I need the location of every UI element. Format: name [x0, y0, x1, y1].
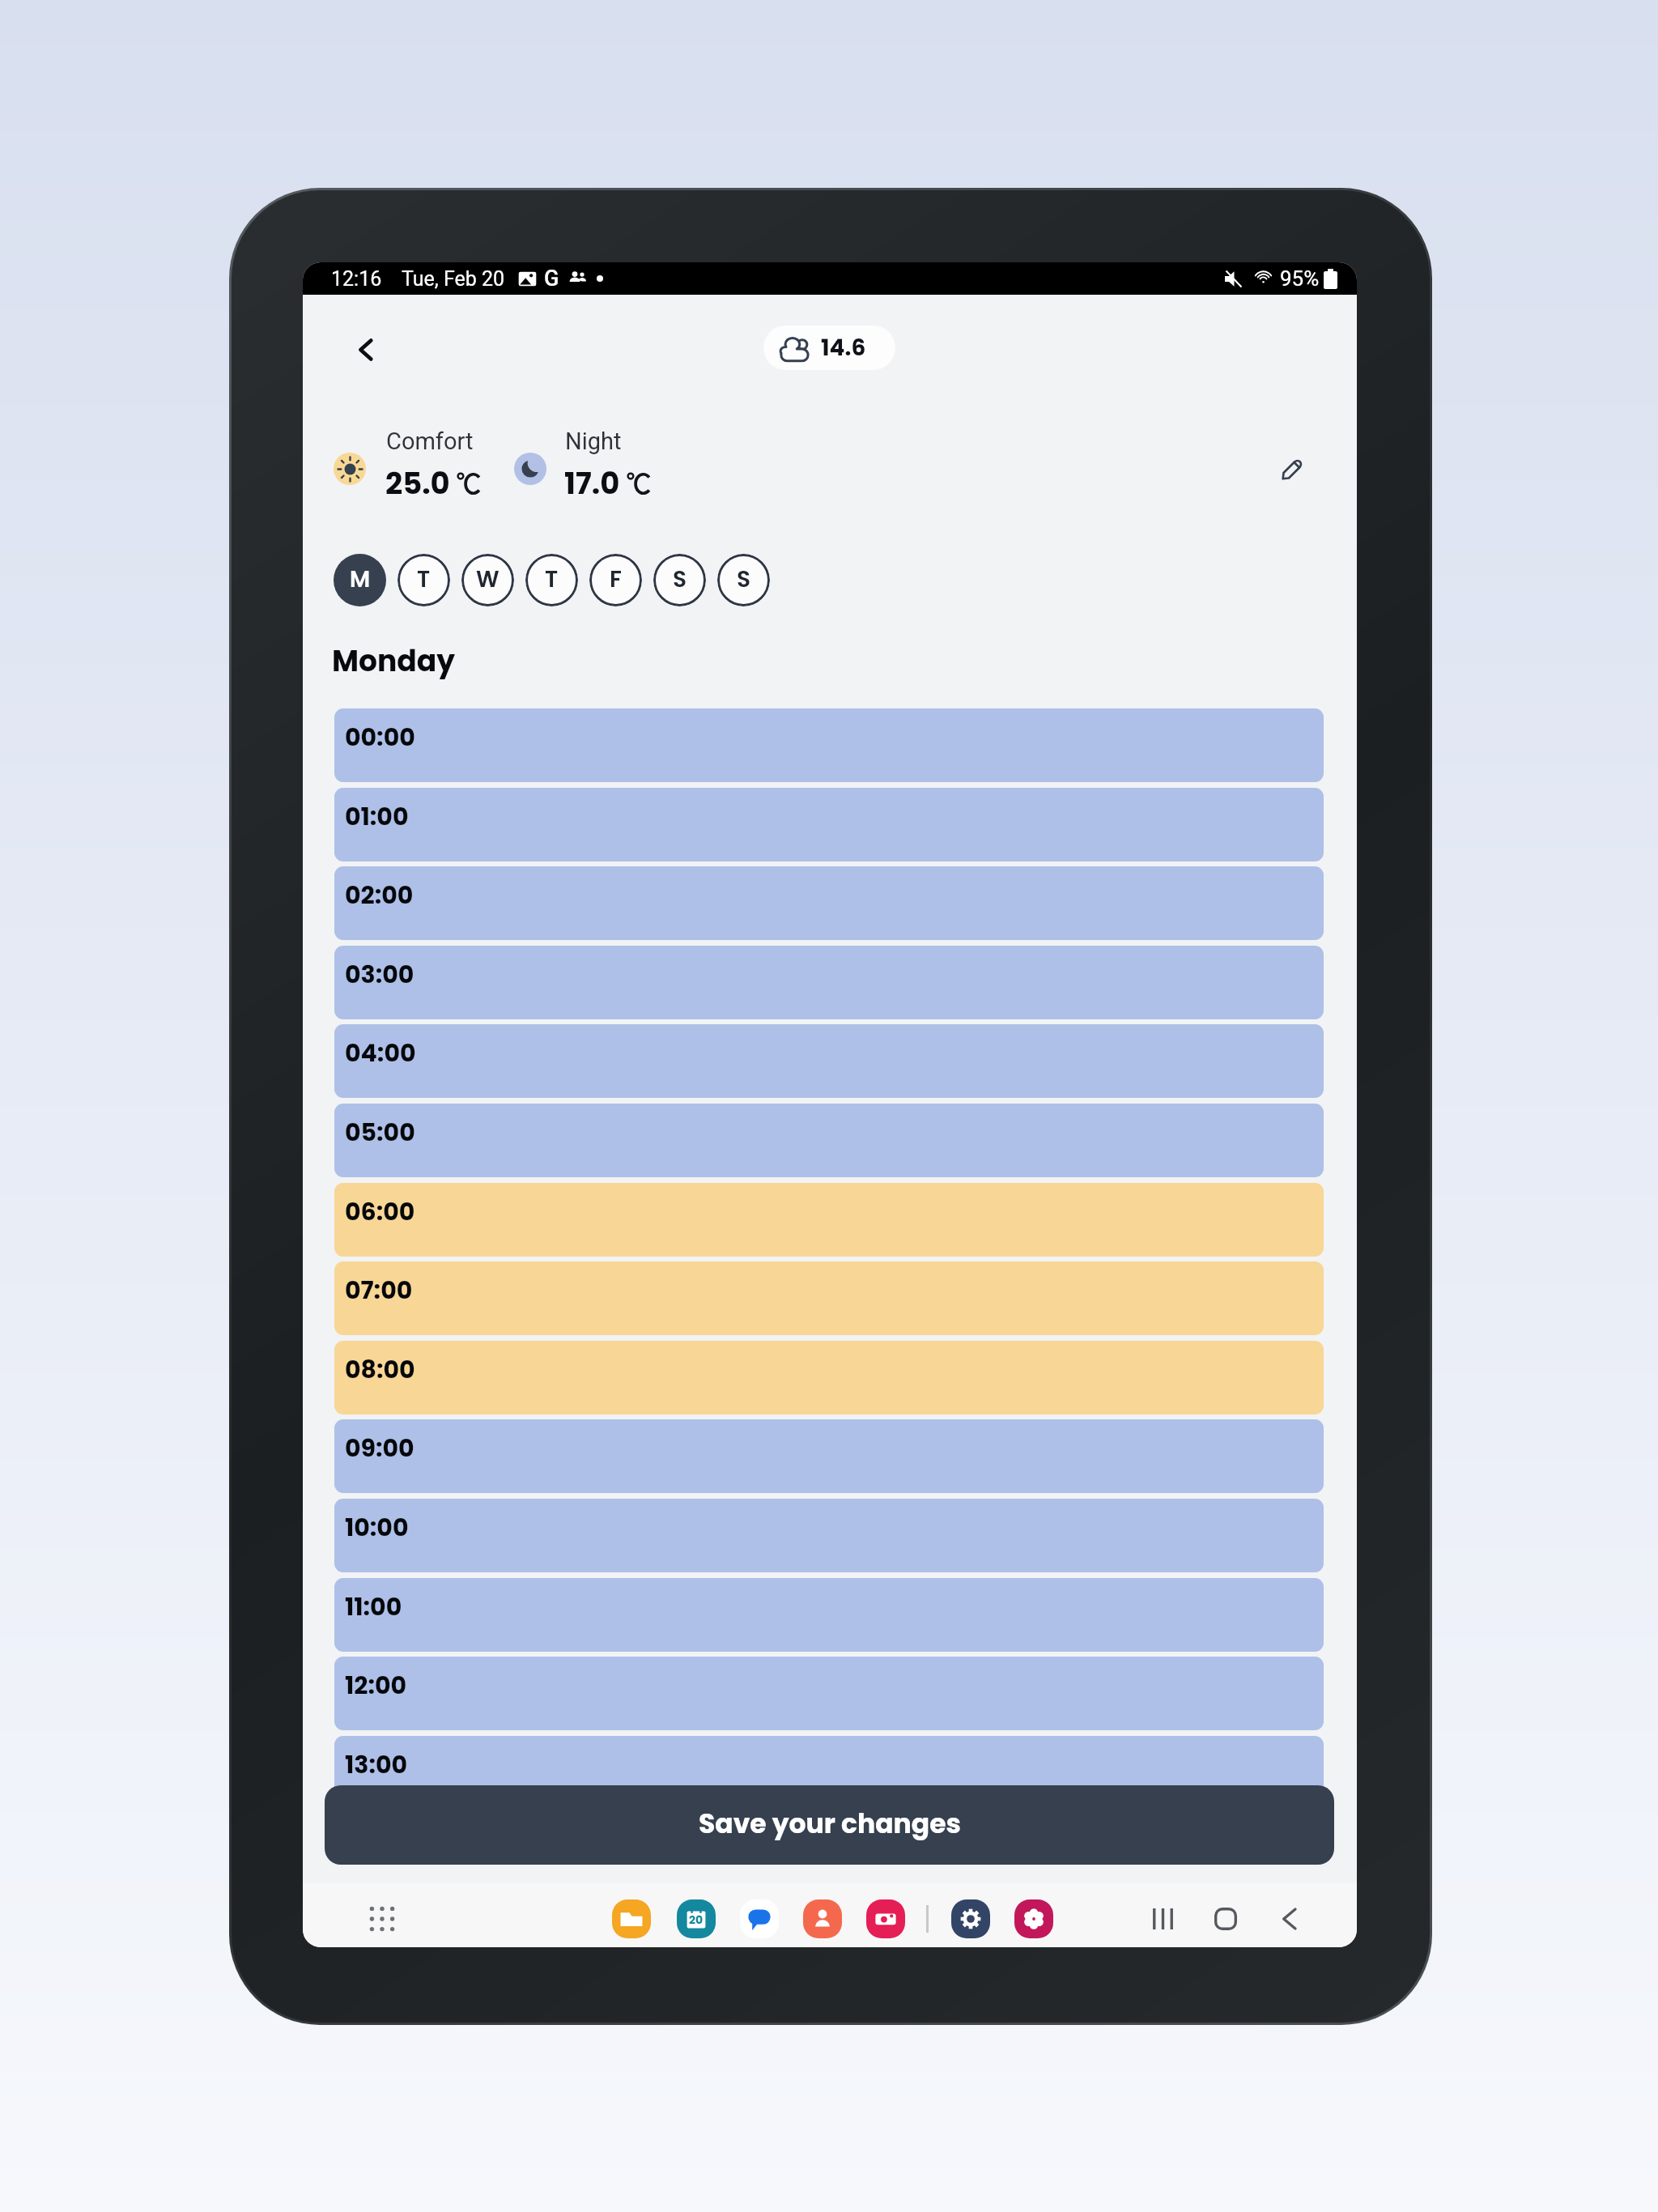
button[interactable]: 03:00	[334, 946, 1324, 1019]
staticText: T	[417, 564, 431, 595]
staticText: 08:00	[345, 1353, 415, 1387]
staticText: Monday	[332, 640, 455, 681]
button[interactable]: 06:00	[334, 1183, 1324, 1257]
staticText: 13:00	[345, 1748, 408, 1782]
staticText: Comfort	[386, 428, 474, 455]
staticText: 00:00	[345, 721, 415, 755]
button[interactable]: S	[653, 554, 706, 606]
staticText: Tue, Feb 20	[402, 267, 505, 291]
staticText: 03:00	[345, 958, 414, 992]
staticText: 11:00	[345, 1590, 402, 1624]
button[interactable]: 14.6	[763, 325, 895, 370]
button[interactable]: Save your changes	[325, 1785, 1334, 1865]
button[interactable]: Back	[1268, 1898, 1310, 1940]
button[interactable]: Contacts	[803, 1899, 842, 1938]
staticText: 10:00	[345, 1511, 409, 1545]
staticText: 14.6	[821, 332, 866, 364]
staticText: 01:00	[345, 800, 409, 834]
button[interactable]: Calendar	[677, 1899, 716, 1938]
staticText: Save your changes	[699, 1805, 961, 1842]
staticText: 25.0	[385, 462, 450, 504]
button[interactable]: Recents	[1141, 1898, 1184, 1940]
button[interactable]: Messages	[740, 1899, 779, 1938]
button[interactable]: 13:00	[334, 1736, 1324, 1810]
button[interactable]: 11:00	[334, 1578, 1324, 1652]
staticText: 04:00	[345, 1036, 416, 1070]
button[interactable]: S	[717, 554, 770, 606]
staticText: 12:16	[331, 267, 382, 291]
staticText: 17.0	[564, 462, 620, 504]
button[interactable]: 05:00	[334, 1104, 1324, 1177]
button[interactable]: 04:00	[334, 1024, 1324, 1098]
staticText: 20	[689, 1912, 704, 1928]
staticText: 95%	[1280, 266, 1320, 291]
button[interactable]: Home	[1205, 1898, 1247, 1940]
button[interactable]: T	[525, 554, 578, 606]
staticText: 07:00	[345, 1274, 413, 1308]
button[interactable]: 10:00	[334, 1499, 1324, 1572]
button[interactable]: M	[334, 554, 386, 606]
button[interactable]: W	[461, 554, 514, 606]
button[interactable]: Gallery	[1014, 1899, 1053, 1938]
button[interactable]: 09:00	[334, 1419, 1324, 1493]
staticText: F	[610, 564, 622, 595]
staticText: 09:00	[345, 1431, 414, 1465]
button[interactable]: 12:00	[334, 1657, 1324, 1730]
button[interactable]: Apps	[368, 1904, 397, 1933]
staticText: Night	[565, 428, 622, 455]
button[interactable]: Camera	[866, 1899, 905, 1938]
button[interactable]: 07:00	[334, 1261, 1324, 1335]
button[interactable]: 00:00	[334, 708, 1324, 782]
staticText: 02:00	[345, 878, 414, 912]
button[interactable]: Back	[339, 324, 391, 376]
button[interactable]: T	[397, 554, 450, 606]
staticText: 05:00	[345, 1116, 415, 1150]
staticText: T	[545, 564, 559, 595]
button[interactable]: Settings	[951, 1899, 990, 1938]
staticText: 06:00	[345, 1195, 415, 1229]
staticText: S	[737, 564, 751, 595]
button[interactable]: 08:00	[334, 1341, 1324, 1414]
button[interactable]: Edit	[1266, 444, 1318, 496]
staticText: G	[544, 266, 559, 291]
button[interactable]: 01:00	[334, 788, 1324, 861]
staticText: 12:00	[345, 1669, 407, 1703]
staticText: W	[476, 564, 500, 595]
staticText: S	[673, 564, 687, 595]
button[interactable]: Files	[612, 1899, 651, 1938]
button[interactable]: 02:00	[334, 866, 1324, 940]
staticText: M	[350, 564, 371, 595]
button[interactable]: F	[589, 554, 642, 606]
